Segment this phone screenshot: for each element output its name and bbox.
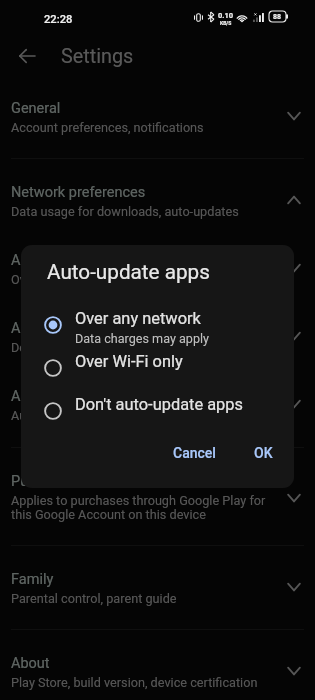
button[interactable]: About [0,646,315,700]
staticText: Data usage for downloads, auto-updates [11,204,239,219]
staticText: Account preferences, notifications [11,120,204,135]
staticText: About [11,655,50,672]
staticText: General [11,100,61,117]
button[interactable]: App download preference [0,243,315,311]
staticText: Applies to purchases through Google Play… [11,493,266,522]
staticText: Play Store, build version, device certif… [11,675,258,690]
button[interactable]: Auto-play videos [0,379,315,447]
staticText: Auto-update apps [11,320,126,337]
staticText: Network preferences [11,184,146,201]
staticText: Don't auto-update apps [75,395,243,414]
staticText: Over any network [11,272,109,287]
staticText: 22:28 [44,13,73,26]
staticText: App download preference [11,252,177,269]
staticText: Auto-play videos [11,388,118,405]
button[interactable]: Back [7,36,47,76]
button[interactable]: Don't auto-update apps [21,389,294,433]
staticText: Parental control, parent guide [11,591,177,606]
staticText: Over any network [75,309,201,328]
button[interactable]: Purchases [0,464,315,545]
staticText: KB/S [220,20,232,26]
button[interactable]: Over any network [21,245,294,305]
button[interactable]: Auto-update apps [0,311,315,379]
staticText: 0.10 [218,11,234,20]
staticText: Settings [61,45,134,68]
staticText: OK [254,445,273,461]
staticText: Autoplay videos on Wi-Fi only [11,408,176,423]
button[interactable]: Cancel [165,440,224,466]
staticText: Don't auto-update apps [11,340,142,355]
staticText: Family [11,571,54,588]
staticText: Over Wi-Fi only [75,352,183,371]
button[interactable]: OK [246,440,281,466]
staticText: Auto-update apps [47,260,210,284]
button[interactable]: Family [0,562,315,629]
staticText: Data charges may apply [75,331,210,346]
staticText: Cancel [173,445,216,461]
button[interactable]: General [0,91,315,158]
staticText: Purchases [11,473,80,490]
button[interactable]: Network preferences [0,175,315,243]
button[interactable]: Over Wi-Fi only [21,346,294,390]
staticText: 88 [273,13,282,21]
